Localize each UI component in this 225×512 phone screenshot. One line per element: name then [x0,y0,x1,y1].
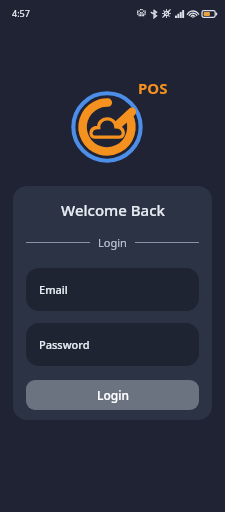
staticText: Password [39,337,90,352]
button[interactable]: Email [26,268,199,311]
staticText: POS [138,78,168,98]
staticText: Email [39,282,68,297]
button[interactable]: Password [26,323,199,366]
staticText: Login [97,387,129,403]
staticText: Login [98,235,127,250]
staticText: 4:57 [12,7,30,19]
button[interactable]: Login [26,380,199,410]
staticText: Welcome Back [61,200,165,220]
